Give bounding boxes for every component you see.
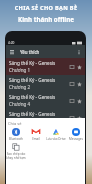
button[interactable]: Favourite bbox=[75, 97, 83, 105]
staticText: 4:20 bbox=[8, 41, 15, 45]
staticText: Email bbox=[32, 137, 40, 141]
staticText: Yêu thích bbox=[20, 49, 40, 55]
staticText: Bluetooth bbox=[9, 137, 23, 141]
button[interactable]: Messages bbox=[66, 128, 85, 141]
button[interactable]: Sáng thế Ký - Genesis bbox=[6, 75, 85, 92]
staticText: Chương 2 bbox=[9, 84, 31, 90]
staticText: Sáng thế Ký - Genesis bbox=[9, 60, 56, 66]
button[interactable]: Sao chép vào khay nhớ tạm bbox=[6, 143, 26, 160]
staticText: Lưu vào Drive bbox=[46, 137, 66, 141]
staticText: Kinh thánh offline bbox=[0, 15, 92, 23]
button[interactable]: Favourite bbox=[75, 114, 83, 122]
button[interactable]: Sáng thế Ký - Genesis bbox=[6, 109, 85, 126]
staticText: Chia sẻ bbox=[8, 121, 22, 126]
staticText: CHIA SẺ CHO BẠN BÈ bbox=[0, 4, 92, 12]
button[interactable]: Bluetooth bbox=[6, 128, 26, 141]
staticText: Sáng thế Ký - Genesis bbox=[9, 94, 56, 100]
button[interactable]: Favourite bbox=[75, 63, 83, 71]
button[interactable]: Favourite bbox=[75, 80, 83, 88]
staticText: Sáng thế Ký - Genesis bbox=[9, 111, 56, 117]
button[interactable]: Note bbox=[68, 80, 75, 87]
button[interactable]: Sáng thế Ký - Genesis bbox=[6, 58, 85, 75]
button[interactable]: Note bbox=[68, 114, 75, 121]
button[interactable]: Sáng thế Ký - Genesis bbox=[6, 92, 85, 109]
button[interactable]: More options bbox=[76, 49, 82, 55]
button[interactable]: Note bbox=[68, 97, 75, 104]
staticText: Messages bbox=[69, 137, 83, 141]
staticText: Chương 5 bbox=[9, 118, 31, 124]
button[interactable]: Menu bbox=[9, 49, 15, 55]
button[interactable]: Note bbox=[68, 63, 75, 70]
button[interactable]: Email bbox=[26, 128, 46, 141]
staticText: Sáng thế Ký - Genesis bbox=[9, 77, 56, 83]
staticText: Chương 4 bbox=[9, 101, 31, 107]
staticText: Chương 1 bbox=[9, 67, 31, 73]
staticText: Sao chép vào khay nhớ tạm bbox=[6, 152, 26, 160]
button[interactable]: Lưu vào Drive bbox=[46, 128, 66, 141]
